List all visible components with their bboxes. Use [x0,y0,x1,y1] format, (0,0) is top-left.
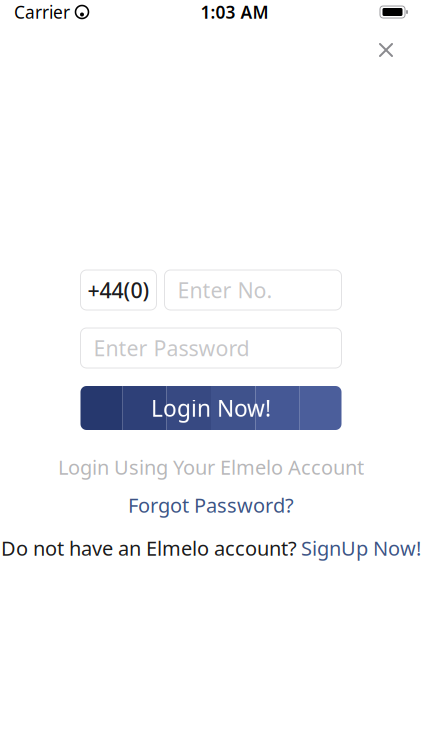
staticText: Carrier [14,0,70,23]
button[interactable]: Login Using Your Elmelo Account [58,457,364,477]
staticText: Forgot Password? [128,492,294,518]
button[interactable]: Close [364,28,408,72]
staticText: Login Now! [151,393,271,423]
staticText: Do not have an Elmelo account? [1,535,297,561]
staticText: Login Using Your Elmelo Account [58,454,364,480]
staticText: SignUp Now! [301,535,421,561]
staticText: Enter No. [177,276,272,304]
button[interactable]: Forgot Password? [128,495,294,515]
staticText: 1:03 AM [200,0,268,23]
button[interactable]: Login Now! [80,386,341,430]
staticText: +44(0) [87,276,149,304]
button[interactable]: SignUp Now! [301,535,421,561]
staticText: Enter Password [93,334,249,362]
